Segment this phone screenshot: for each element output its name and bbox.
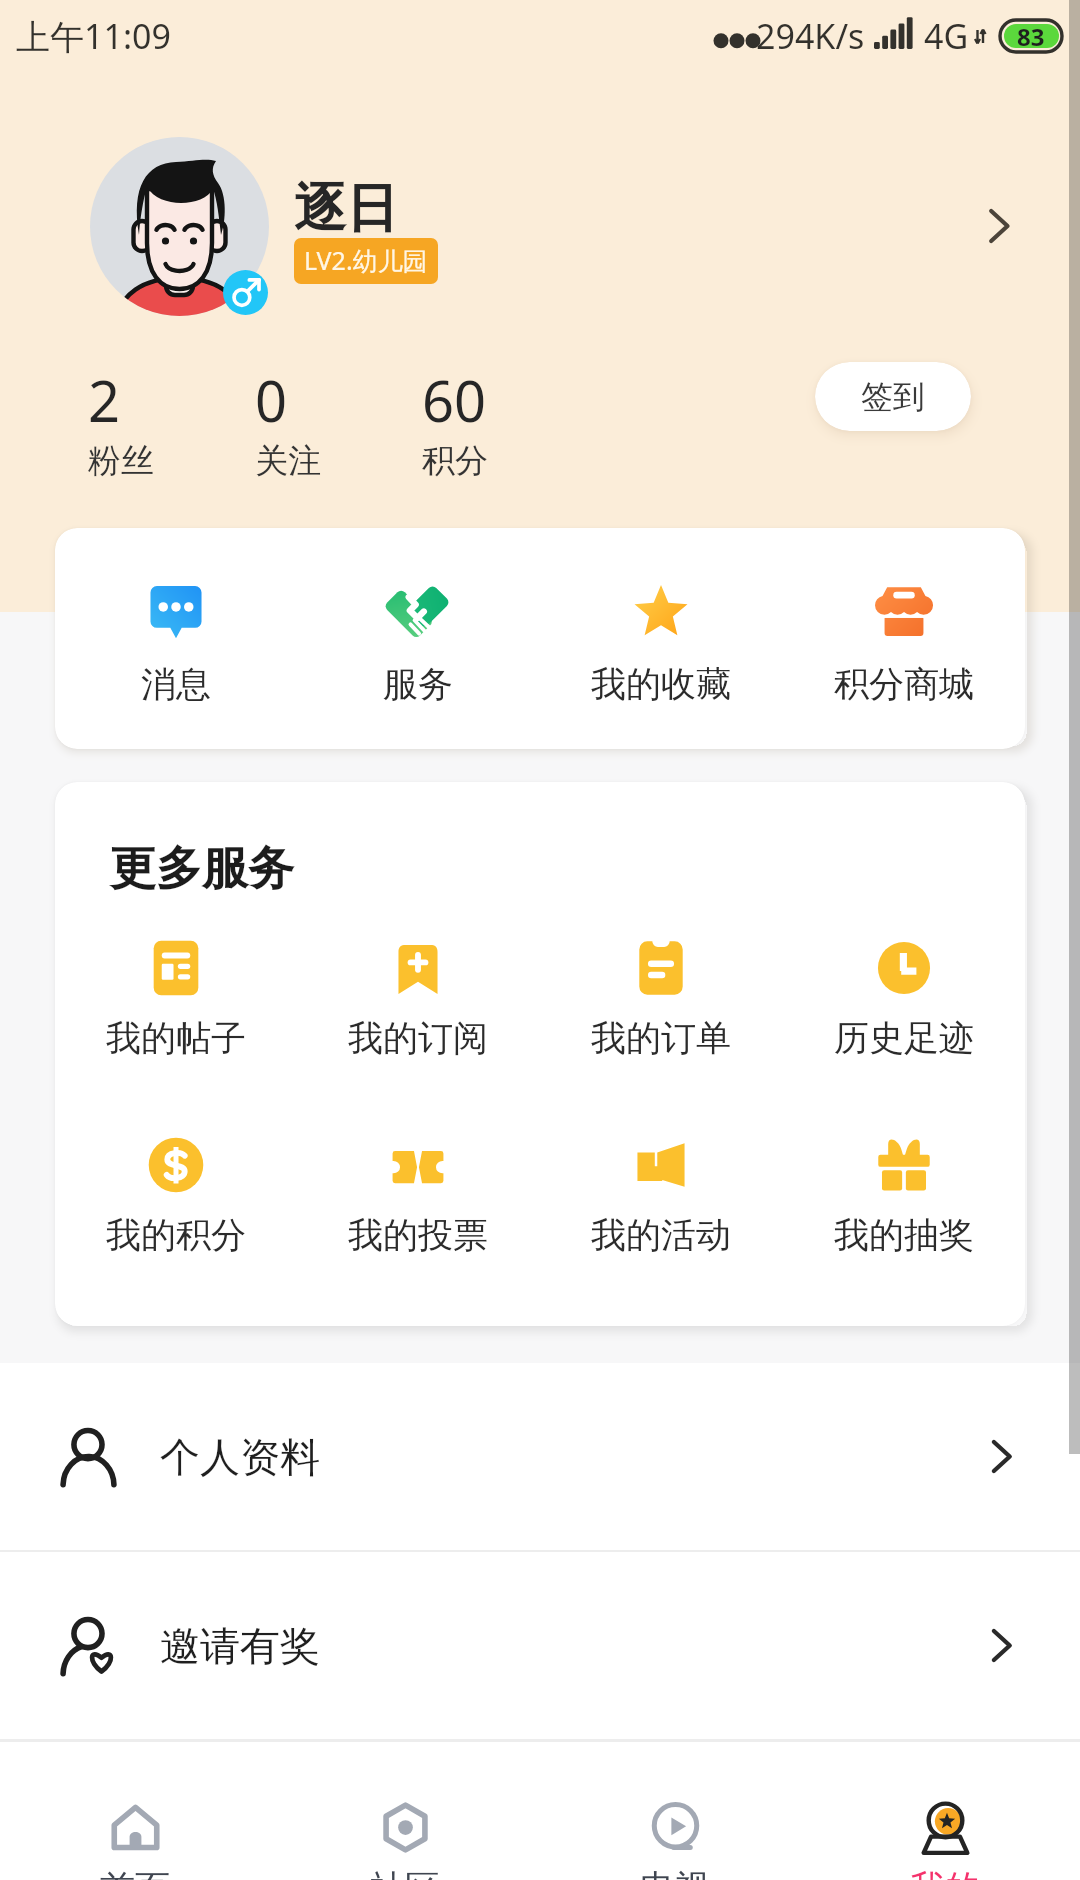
staticText: 关注 xyxy=(255,440,321,480)
staticText: 我的 xyxy=(910,1866,980,1880)
staticText: 服务 xyxy=(383,662,453,706)
staticText: 首页 xyxy=(100,1866,170,1880)
staticText: 逐日 xyxy=(294,176,398,242)
staticText: 上午11:09 xyxy=(16,13,171,59)
staticText: 83 xyxy=(1017,20,1045,53)
button[interactable]: 我的订阅 xyxy=(297,937,539,1060)
button[interactable]: 我的抽奖 xyxy=(782,1134,1025,1257)
staticText: 我的帖子 xyxy=(106,1016,246,1060)
staticText: 积分 xyxy=(422,440,488,480)
staticText: 我的积分 xyxy=(106,1213,246,1257)
button[interactable]: 个人资料 xyxy=(62,1363,1017,1550)
staticText: 我的投票 xyxy=(348,1213,488,1257)
button[interactable]: 签到 xyxy=(815,362,971,431)
staticText: 2 xyxy=(88,362,121,438)
staticText: 积分商城 xyxy=(834,662,974,706)
staticText: 294K/s xyxy=(756,13,865,59)
button[interactable]: 邀请有奖 xyxy=(62,1552,1017,1739)
staticText: 60 xyxy=(422,362,487,438)
button[interactable]: 我的订单 xyxy=(539,937,782,1060)
button[interactable]: 社区 xyxy=(270,1798,540,1880)
staticText: 消息 xyxy=(141,662,211,706)
staticText: 4G xyxy=(924,13,969,59)
staticText: 电视 xyxy=(640,1866,710,1880)
staticText: 社区 xyxy=(370,1866,440,1880)
staticText: 历史足迹 xyxy=(834,1016,974,1060)
staticText: 我的收藏 xyxy=(591,662,731,706)
staticText: 我的订单 xyxy=(591,1016,731,1060)
button[interactable]: 我的 xyxy=(810,1798,1080,1880)
button[interactable]: 我的帖子 xyxy=(55,937,297,1060)
button[interactable]: 逐日 xyxy=(90,136,1020,316)
button[interactable]: 首页 xyxy=(0,1798,270,1880)
staticText: 我的活动 xyxy=(591,1213,731,1257)
staticText: 签到 xyxy=(861,377,925,417)
button[interactable]: Open profile details xyxy=(976,204,1020,248)
staticText: 我的订阅 xyxy=(348,1016,488,1060)
staticText: 邀请有奖 xyxy=(160,1621,320,1671)
button[interactable]: 历史足迹 xyxy=(782,937,1025,1060)
staticText: 个人资料 xyxy=(160,1432,320,1482)
button[interactable]: 我的活动 xyxy=(539,1134,782,1257)
button[interactable]: 电视 xyxy=(540,1798,810,1880)
staticText: 我的抽奖 xyxy=(834,1213,974,1257)
button[interactable]: 消息 xyxy=(55,582,297,706)
staticText: 粉丝 xyxy=(88,440,154,480)
staticText: 更多服务 xyxy=(110,840,294,898)
staticText: 0 xyxy=(255,362,288,438)
button[interactable]: 我的积分 xyxy=(55,1134,297,1257)
button[interactable]: 我的收藏 xyxy=(539,582,782,706)
staticText: LV2.幼儿园 xyxy=(304,243,428,277)
button[interactable]: 我的投票 xyxy=(297,1134,539,1257)
button[interactable]: 积分商城 xyxy=(782,582,1025,706)
button[interactable]: 服务 xyxy=(297,582,539,706)
